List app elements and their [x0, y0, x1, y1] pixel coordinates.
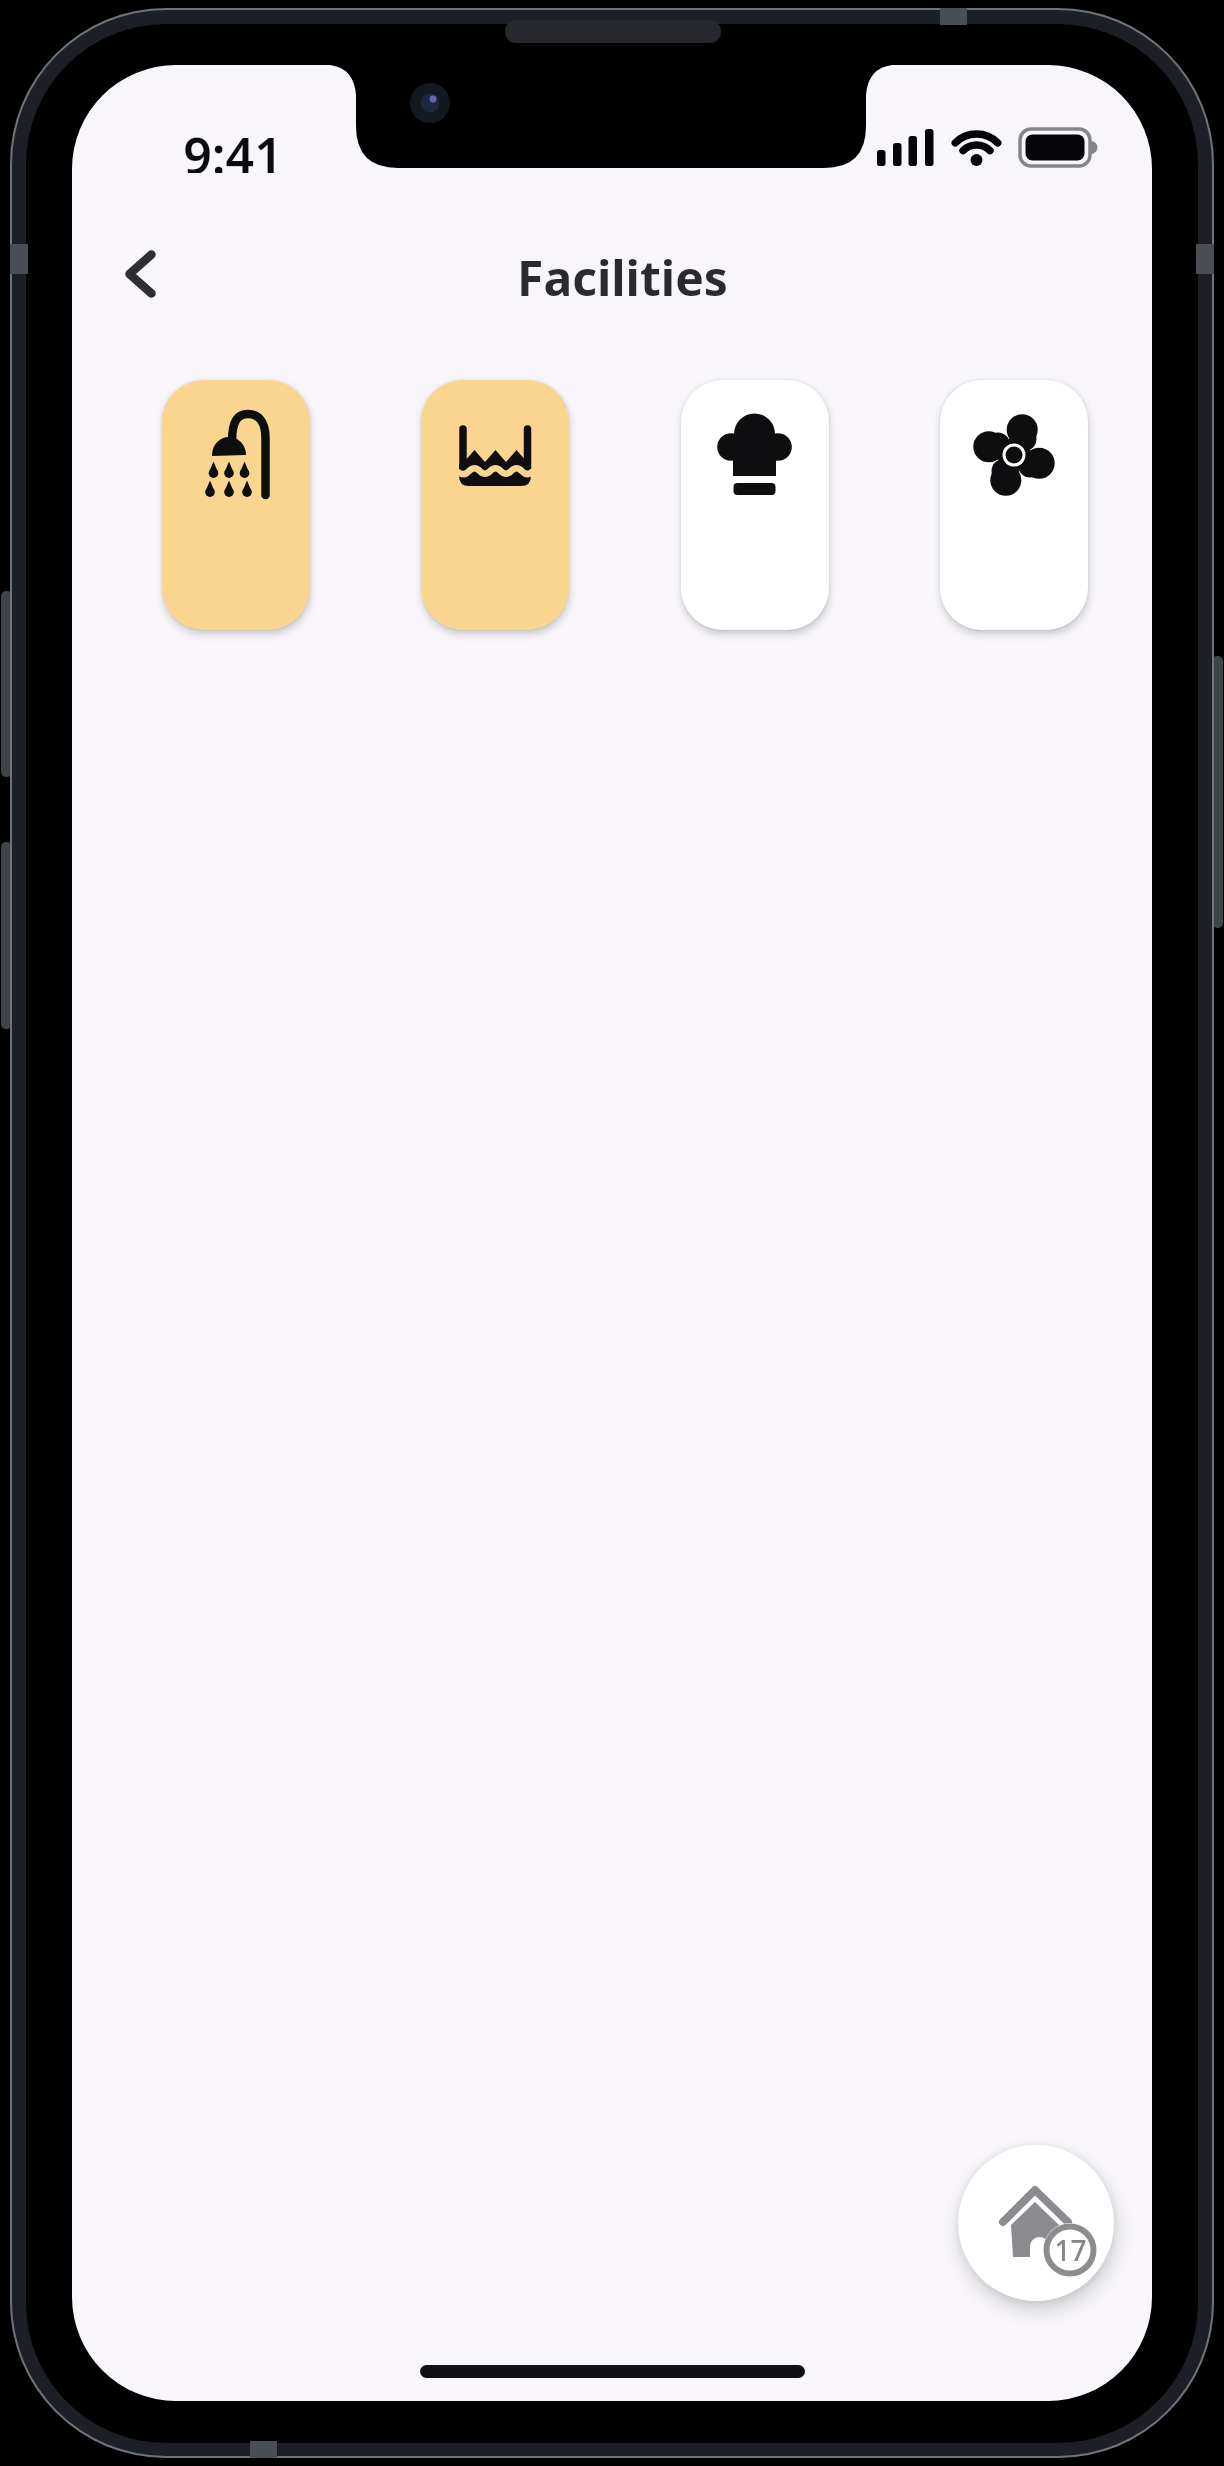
staticText: 9:41	[183, 121, 283, 173]
button[interactable]	[421, 380, 569, 630]
button[interactable]	[940, 380, 1088, 630]
button[interactable]	[162, 380, 310, 630]
button[interactable]: 17	[958, 2145, 1114, 2301]
button[interactable]	[102, 225, 202, 325]
button[interactable]	[681, 380, 829, 630]
staticText: 17	[1054, 2231, 1087, 2269]
staticText: Facilities	[517, 245, 728, 303]
